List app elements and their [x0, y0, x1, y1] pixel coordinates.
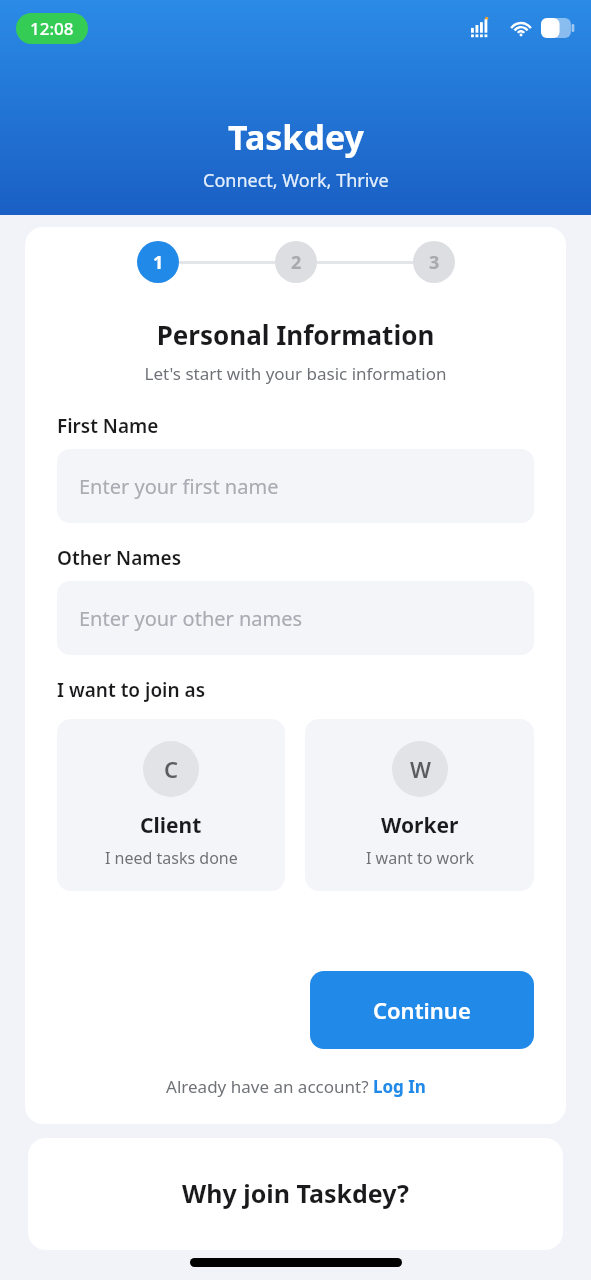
button[interactable]: 1: [137, 241, 179, 283]
button[interactable]: 3: [413, 241, 455, 283]
staticText: Let's start with your basic information: [25, 362, 566, 385]
staticText: Already have an account? Log In: [166, 1075, 426, 1098]
staticText: 2: [291, 250, 302, 275]
staticText: Other Names: [57, 545, 181, 571]
button[interactable]: Enter your first name: [57, 449, 534, 523]
staticText: Continue: [373, 995, 471, 1025]
button[interactable]: Already have an account? Log In: [57, 1075, 534, 1098]
staticText: Taskdey: [228, 114, 364, 160]
button[interactable]: C: [57, 719, 285, 891]
staticText: First Name: [57, 413, 159, 439]
staticText: C: [164, 754, 179, 784]
staticText: 3: [429, 250, 440, 275]
staticText: Enter your first name: [79, 473, 279, 500]
staticText: Connect, Work, Thrive: [203, 168, 389, 193]
staticText: W: [410, 754, 431, 784]
staticText: 12:08: [30, 17, 74, 40]
staticText: I want to work: [366, 847, 474, 869]
staticText: Personal Information: [25, 317, 566, 352]
staticText: 1: [153, 250, 164, 275]
staticText: Why join Taskdey?: [182, 1176, 409, 1210]
button[interactable]: Enter your other names: [57, 581, 534, 655]
staticText: I want to join as: [57, 677, 206, 703]
staticText: Client: [140, 811, 202, 840]
button[interactable]: Continue: [310, 971, 534, 1049]
button[interactable]: W: [305, 719, 534, 891]
button[interactable]: 2: [275, 241, 317, 283]
staticText: I need tasks done: [105, 847, 238, 869]
staticText: Enter your other names: [79, 605, 303, 632]
staticText: Worker: [381, 811, 459, 840]
